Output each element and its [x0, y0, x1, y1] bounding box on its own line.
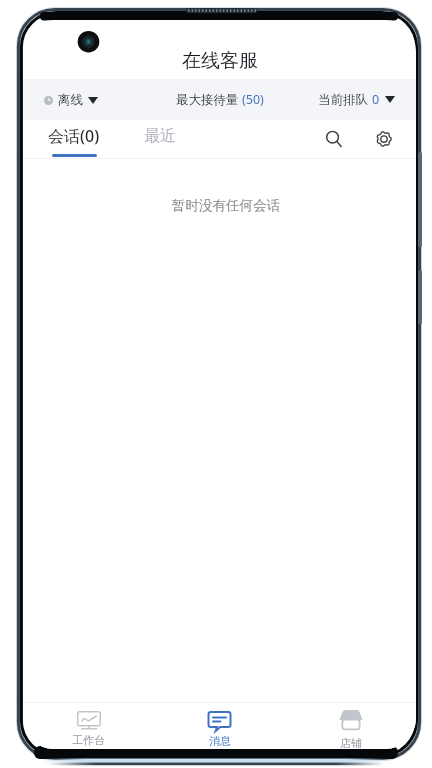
button[interactable]: 店铺	[285, 703, 416, 749]
staticText: 消息	[209, 734, 231, 748]
button[interactable]: 当前排队	[310, 91, 416, 108]
button[interactable]: 工作台	[23, 703, 154, 749]
staticText: 最大接待量	[176, 91, 242, 108]
staticText: 会话(0)	[48, 125, 100, 147]
staticText: 暂时没有任何会话	[172, 197, 280, 214]
staticText: 离线	[58, 92, 83, 108]
button[interactable]: Settings	[366, 121, 402, 157]
button[interactable]: 会话(0)	[40, 120, 108, 158]
button[interactable]: Search	[316, 121, 352, 157]
button[interactable]: 消息	[154, 703, 285, 749]
staticText: 工作台	[72, 733, 105, 747]
staticText: 0	[372, 91, 380, 108]
staticText: 最近	[144, 126, 176, 146]
staticText: 店铺	[340, 736, 362, 749]
staticText: (50)	[242, 91, 264, 108]
button[interactable]: 最近	[140, 120, 180, 158]
button[interactable]: 离线	[23, 92, 106, 108]
staticText: 在线客服	[182, 49, 258, 73]
staticText: 当前排队	[318, 91, 372, 108]
